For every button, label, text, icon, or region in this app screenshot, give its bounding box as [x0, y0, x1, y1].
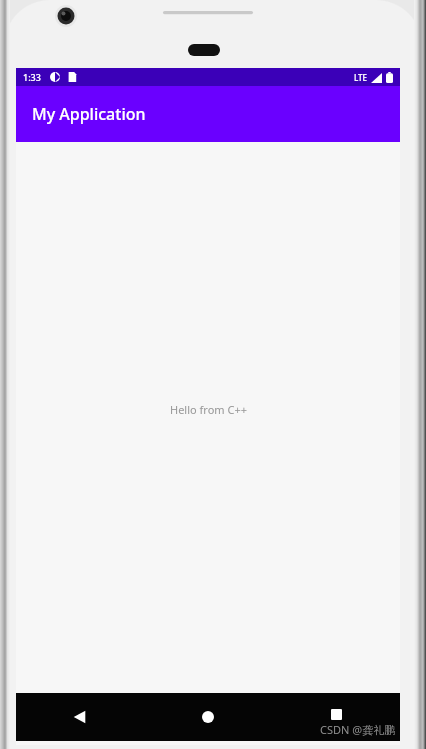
staticText: 1:33 [23, 71, 41, 83]
staticText: CSDN @龚礼鹏 [320, 722, 396, 737]
button[interactable]: Home [144, 693, 272, 741]
button[interactable]: My Application [16, 86, 400, 142]
staticText: LTE [354, 72, 368, 83]
button[interactable]: Back [16, 693, 144, 741]
button[interactable]: Recent apps [272, 693, 400, 741]
staticText: Hello from C++ [170, 402, 247, 417]
staticText: My Application [32, 103, 146, 125]
